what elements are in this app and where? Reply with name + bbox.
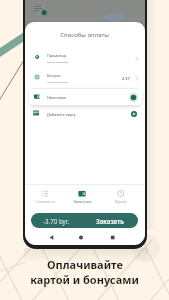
- button[interactable]: -3.70 byr.: [31, 213, 138, 228]
- staticText: Наличные: [47, 95, 67, 100]
- staticText: Бонусы: [47, 73, 61, 78]
- other: Добавить карту: [131, 111, 137, 117]
- staticText: Стоимость: [36, 199, 55, 204]
- button[interactable]: Промокод: [29, 49, 141, 69]
- staticText: Заказать: [96, 217, 124, 225]
- staticText: картой и бонусами: [30, 272, 139, 287]
- staticText: Промокод: [47, 53, 66, 58]
- button[interactable]: Добавить карту: [29, 106, 141, 122]
- staticText: Наличные: [73, 199, 92, 204]
- staticText: 2.37: [122, 76, 130, 81]
- staticText: Оплачивайте: [47, 257, 123, 272]
- staticText: Способы оплаты: [60, 31, 109, 39]
- staticText: -3.70 byr.: [43, 217, 69, 225]
- staticText: не использованы: [47, 80, 69, 83]
- button[interactable]: Время: [103, 184, 139, 205]
- button[interactable]: Наличные: [64, 184, 100, 205]
- button[interactable]: Наличные: [29, 89, 142, 105]
- button[interactable]: Бонусы: [29, 69, 141, 89]
- staticText: ввести промокод: [47, 60, 68, 63]
- button[interactable]: Стоимость: [27, 184, 63, 205]
- staticText: Добавить карту: [47, 112, 76, 117]
- staticText: Время: [115, 199, 127, 204]
